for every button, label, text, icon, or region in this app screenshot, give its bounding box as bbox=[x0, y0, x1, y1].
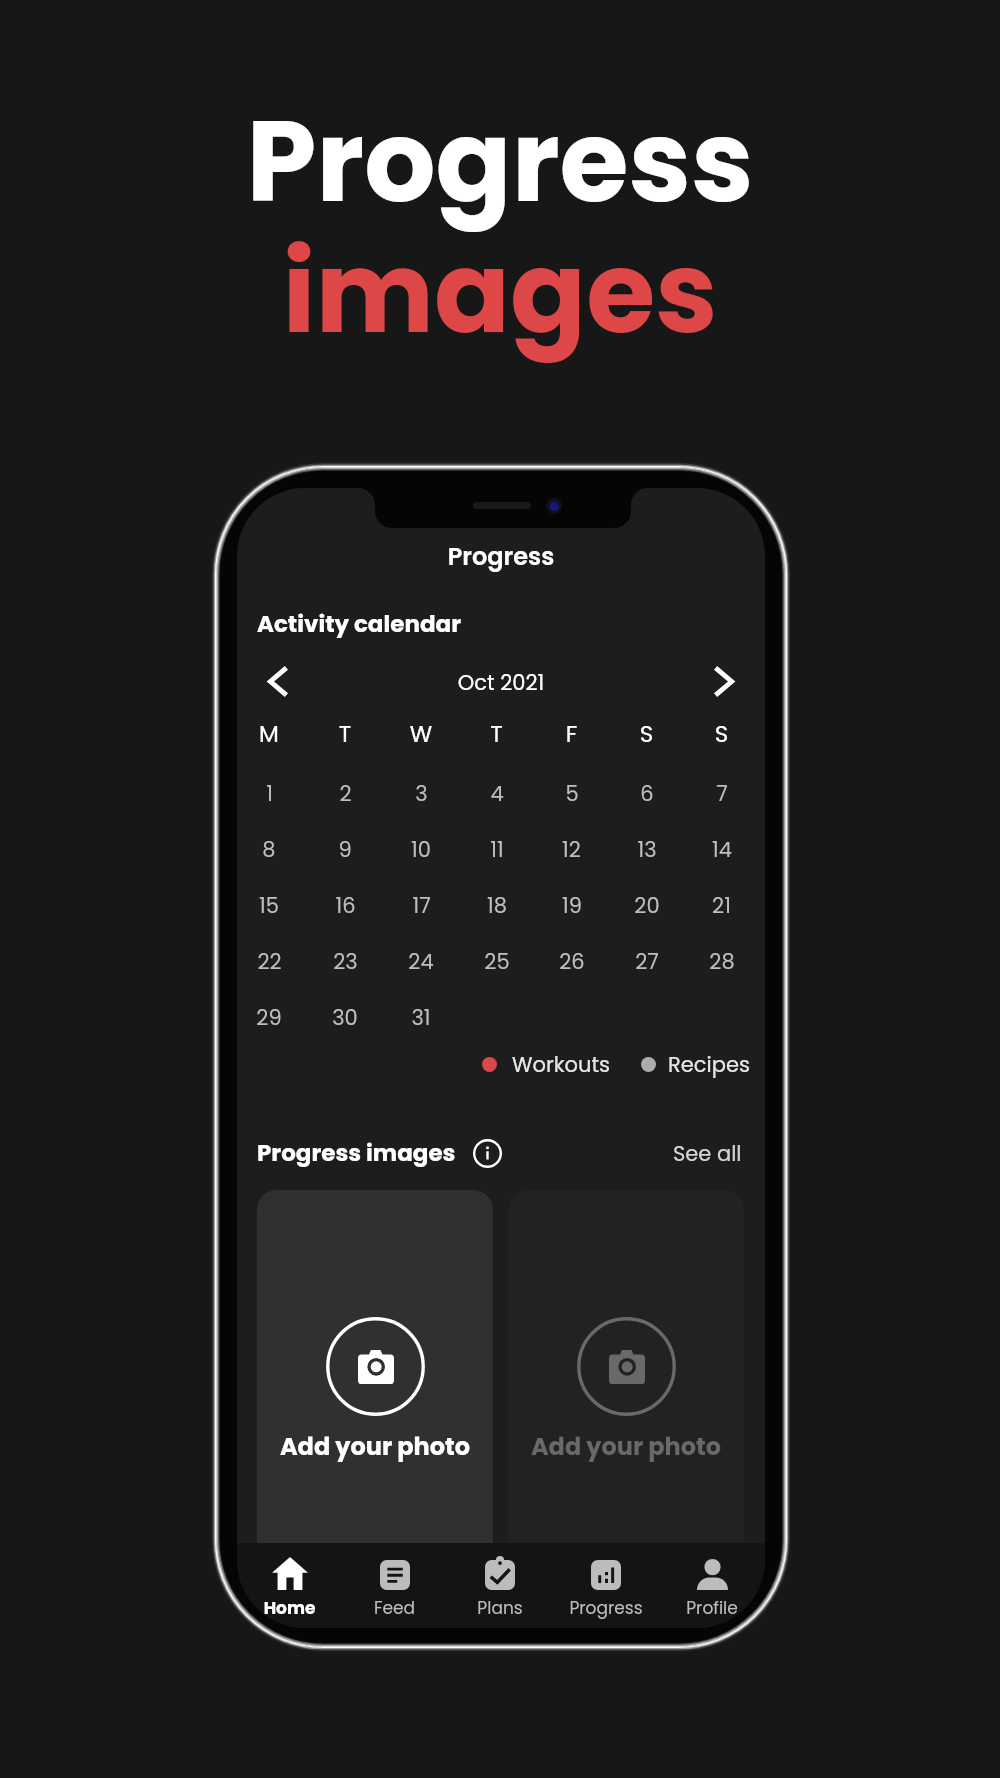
staticText: 17 bbox=[412, 891, 431, 920]
staticText: Progress bbox=[553, 1596, 659, 1620]
staticText: 15 bbox=[259, 891, 279, 920]
staticText: 5 bbox=[565, 779, 579, 808]
button[interactable]: Previous month bbox=[251, 654, 305, 708]
staticText: 20 bbox=[634, 891, 660, 920]
button[interactable]: 19 bbox=[534, 877, 609, 933]
button[interactable]: 3 bbox=[383, 765, 459, 821]
staticText: 21 bbox=[712, 891, 731, 920]
button[interactable]: 5 bbox=[534, 765, 609, 821]
staticText: W bbox=[383, 718, 459, 750]
staticText: 6 bbox=[640, 779, 654, 808]
button[interactable]: 4 bbox=[459, 765, 534, 821]
button[interactable]: 12 bbox=[534, 821, 609, 877]
staticText: 7 bbox=[716, 779, 728, 808]
staticText: F bbox=[534, 718, 609, 750]
staticText: Oct 2021 bbox=[237, 668, 765, 697]
staticText: 31 bbox=[411, 1003, 431, 1032]
staticText: Recipes bbox=[668, 1050, 750, 1079]
button[interactable]: Progress bbox=[553, 1543, 659, 1628]
button[interactable]: Plans bbox=[447, 1543, 553, 1628]
staticText: Progress images bbox=[257, 1137, 456, 1169]
button[interactable]: 15 bbox=[237, 877, 307, 933]
staticText: Progress bbox=[237, 540, 765, 574]
button[interactable]: 21 bbox=[684, 877, 759, 933]
staticText: Home bbox=[237, 1596, 342, 1620]
button[interactable]: 26 bbox=[534, 933, 609, 989]
staticText: T bbox=[459, 718, 534, 750]
staticText: 9 bbox=[338, 835, 352, 864]
staticText: 8 bbox=[262, 835, 276, 864]
staticText: 25 bbox=[484, 947, 510, 976]
staticText: 26 bbox=[559, 947, 585, 976]
staticText: Plans bbox=[447, 1596, 553, 1620]
button[interactable]: Add your photo bbox=[508, 1190, 744, 1546]
staticText: 30 bbox=[332, 1003, 358, 1032]
button[interactable]: 11 bbox=[459, 821, 534, 877]
staticText: 14 bbox=[712, 835, 732, 864]
button[interactable]: 7 bbox=[684, 765, 759, 821]
button[interactable]: 9 bbox=[307, 821, 383, 877]
button[interactable]: Next month bbox=[697, 654, 751, 708]
button[interactable]: 24 bbox=[383, 933, 459, 989]
staticText: T bbox=[307, 718, 383, 750]
button[interactable]: 29 bbox=[237, 989, 307, 1045]
button[interactable]: 13 bbox=[609, 821, 684, 877]
button[interactable]: 18 bbox=[459, 877, 534, 933]
staticText: 12 bbox=[562, 835, 581, 864]
button[interactable]: 16 bbox=[307, 877, 383, 933]
staticText: See all bbox=[673, 1139, 742, 1168]
button[interactable]: 27 bbox=[609, 933, 684, 989]
button[interactable]: 14 bbox=[684, 821, 759, 877]
staticText: Add your photo bbox=[257, 1430, 493, 1464]
staticText: 19 bbox=[562, 891, 582, 920]
button[interactable]: 22 bbox=[237, 933, 307, 989]
button[interactable]: 17 bbox=[383, 877, 459, 933]
staticText: S bbox=[609, 718, 684, 750]
button[interactable]: 30 bbox=[307, 989, 383, 1045]
staticText: S bbox=[684, 718, 759, 750]
button[interactable]: 8 bbox=[237, 821, 307, 877]
button[interactable]: 25 bbox=[459, 933, 534, 989]
button[interactable]: 28 bbox=[684, 933, 759, 989]
staticText: 28 bbox=[709, 947, 735, 976]
staticText: 27 bbox=[635, 947, 659, 976]
button[interactable]: Profile bbox=[659, 1543, 765, 1628]
staticText: 11 bbox=[490, 835, 504, 864]
staticText: 10 bbox=[411, 835, 431, 864]
staticText: Progress bbox=[0, 83, 1000, 240]
button[interactable]: 20 bbox=[609, 877, 684, 933]
staticText: Workouts bbox=[512, 1050, 611, 1079]
staticText: Activity calendar bbox=[257, 608, 461, 640]
staticText: Add your photo bbox=[508, 1430, 744, 1464]
button[interactable]: 10 bbox=[383, 821, 459, 877]
button[interactable]: See all bbox=[673, 1139, 742, 1168]
button[interactable]: 1 bbox=[237, 765, 307, 821]
button[interactable]: 6 bbox=[609, 765, 684, 821]
button[interactable]: Info bbox=[471, 1137, 503, 1169]
staticText: 16 bbox=[335, 891, 356, 920]
button[interactable]: Home bbox=[237, 1543, 342, 1628]
button[interactable]: 2 bbox=[307, 765, 383, 821]
staticText: images bbox=[0, 214, 1000, 371]
staticText: 1 bbox=[266, 779, 273, 808]
staticText: 3 bbox=[415, 779, 428, 808]
staticText: 2 bbox=[339, 779, 352, 808]
staticText: 29 bbox=[256, 1003, 282, 1032]
staticText: 22 bbox=[257, 947, 282, 976]
staticText: Profile bbox=[659, 1596, 765, 1620]
staticText: 23 bbox=[333, 947, 358, 976]
button[interactable]: Add your photo bbox=[257, 1190, 493, 1546]
staticText: 13 bbox=[637, 835, 657, 864]
staticText: M bbox=[237, 718, 307, 750]
staticText: 18 bbox=[487, 891, 507, 920]
staticText: Feed bbox=[342, 1596, 447, 1620]
button[interactable]: Feed bbox=[342, 1543, 447, 1628]
staticText: 4 bbox=[490, 779, 504, 808]
staticText: 24 bbox=[408, 947, 434, 976]
button[interactable]: 31 bbox=[383, 989, 459, 1045]
button[interactable]: 23 bbox=[307, 933, 383, 989]
